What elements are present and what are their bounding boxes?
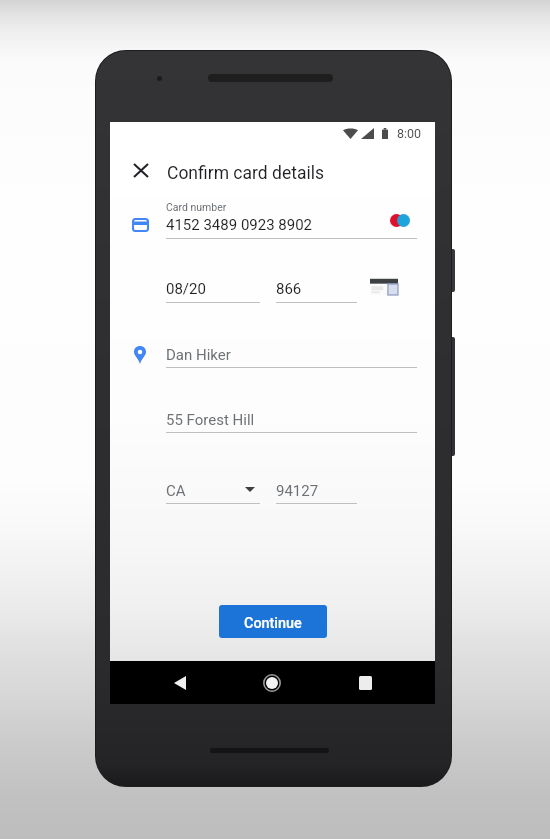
- button[interactable]: 55 Forest Hill: [166, 407, 417, 433]
- button[interactable]: Home: [246, 661, 298, 704]
- staticText: 866: [276, 280, 302, 298]
- button[interactable]: Back: [154, 661, 206, 704]
- button[interactable]: Where is my security code?: [370, 277, 398, 295]
- button[interactable]: 866: [276, 276, 357, 303]
- staticText: 94127: [276, 482, 319, 500]
- button[interactable]: Continue: [219, 605, 327, 638]
- staticText: 08/20: [166, 280, 206, 298]
- staticText: Confirm card details: [167, 163, 324, 184]
- button[interactable]: 94127: [276, 478, 357, 504]
- staticText: 8:00: [397, 126, 422, 141]
- staticText: Continue: [244, 615, 302, 632]
- button[interactable]: Dan Hiker: [166, 342, 417, 368]
- staticText: CA: [166, 482, 186, 500]
- staticText: Dan Hiker: [166, 346, 231, 364]
- button[interactable]: Close: [123, 152, 159, 188]
- button[interactable]: Recents: [339, 661, 391, 704]
- staticText: Card number: [166, 201, 227, 213]
- button[interactable]: 08/20: [166, 276, 260, 303]
- button[interactable]: CA: [166, 478, 260, 503]
- staticText: 55 Forest Hill: [166, 411, 255, 429]
- staticText: 4152 3489 0923 8902: [166, 216, 313, 234]
- button[interactable]: 4152 3489 0923 8902: [166, 212, 417, 239]
